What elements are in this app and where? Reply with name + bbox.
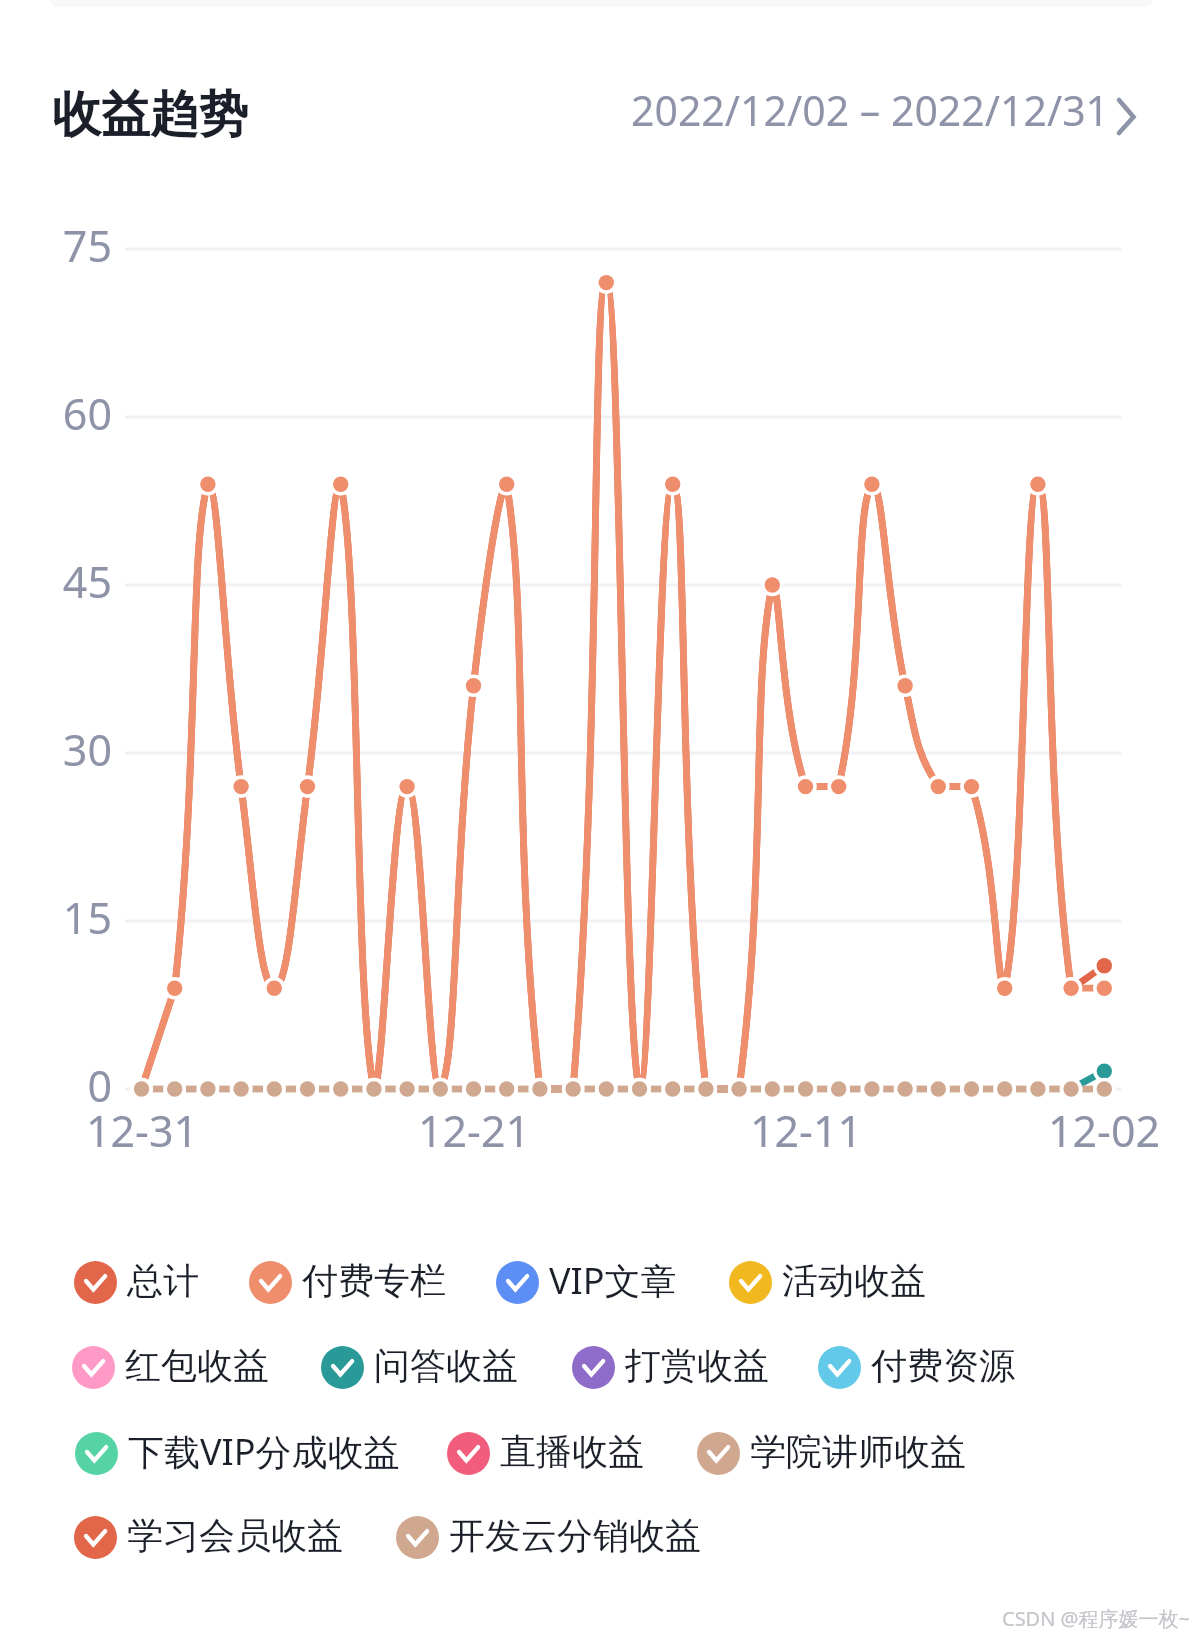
button[interactable]: VIP文章 — [496, 1250, 677, 1310]
button[interactable]: 付费资源 — [818, 1335, 1015, 1395]
staticText: 学习会员收益 — [127, 1513, 343, 1558]
button[interactable]: 打赏收益 — [572, 1335, 769, 1395]
staticText: 12-02 — [1024, 1101, 1184, 1160]
staticText: 直播收益 — [500, 1429, 644, 1474]
staticText: 学院讲师收益 — [750, 1429, 966, 1474]
staticText: 0 — [12, 1056, 112, 1115]
staticText: 打赏收益 — [625, 1343, 769, 1388]
staticText: 12-21 — [394, 1101, 554, 1160]
staticText: 下载VIP分成收益 — [128, 1427, 400, 1476]
staticText: 12-11 — [726, 1101, 886, 1160]
button[interactable]: 2022/12/02 – 2022/12/31 — [631, 82, 1140, 138]
staticText: 活动收益 — [782, 1258, 926, 1303]
staticText: 60 — [12, 384, 112, 443]
staticText: VIP文章 — [549, 1256, 677, 1305]
other: Change date range — [1118, 87, 1140, 133]
button[interactable]: 收益趋势 — [52, 84, 248, 146]
staticText: 红包收益 — [125, 1343, 269, 1388]
button[interactable]: 学院讲师收益 — [697, 1421, 966, 1481]
staticText: 2022/12/02 – 2022/12/31 — [631, 82, 1110, 138]
button[interactable]: 付费专栏 — [249, 1250, 446, 1310]
staticText: 30 — [12, 720, 112, 779]
staticText: 付费专栏 — [302, 1258, 446, 1303]
staticText: 45 — [12, 552, 112, 611]
button[interactable]: 开发云分销收益 — [396, 1505, 701, 1565]
staticText: CSDN @程序媛一枚~ — [1002, 1605, 1191, 1632]
button[interactable]: 红包收益 — [72, 1335, 269, 1395]
button[interactable]: 直播收益 — [447, 1421, 644, 1481]
staticText: 总计 — [127, 1258, 199, 1303]
staticText: 问答收益 — [374, 1343, 518, 1388]
staticText: 15 — [12, 888, 112, 947]
button[interactable]: 总计 — [74, 1250, 199, 1310]
button[interactable]: 下载VIP分成收益 — [75, 1421, 400, 1481]
staticText: 收益趋势 — [52, 84, 248, 146]
button[interactable]: 学习会员收益 — [74, 1505, 343, 1565]
button[interactable]: 问答收益 — [321, 1335, 518, 1395]
staticText: 12-31 — [62, 1101, 222, 1160]
staticText: 付费资源 — [871, 1343, 1015, 1388]
staticText: 75 — [12, 216, 112, 275]
staticText: 开发云分销收益 — [449, 1513, 701, 1558]
button[interactable]: 活动收益 — [729, 1250, 926, 1310]
